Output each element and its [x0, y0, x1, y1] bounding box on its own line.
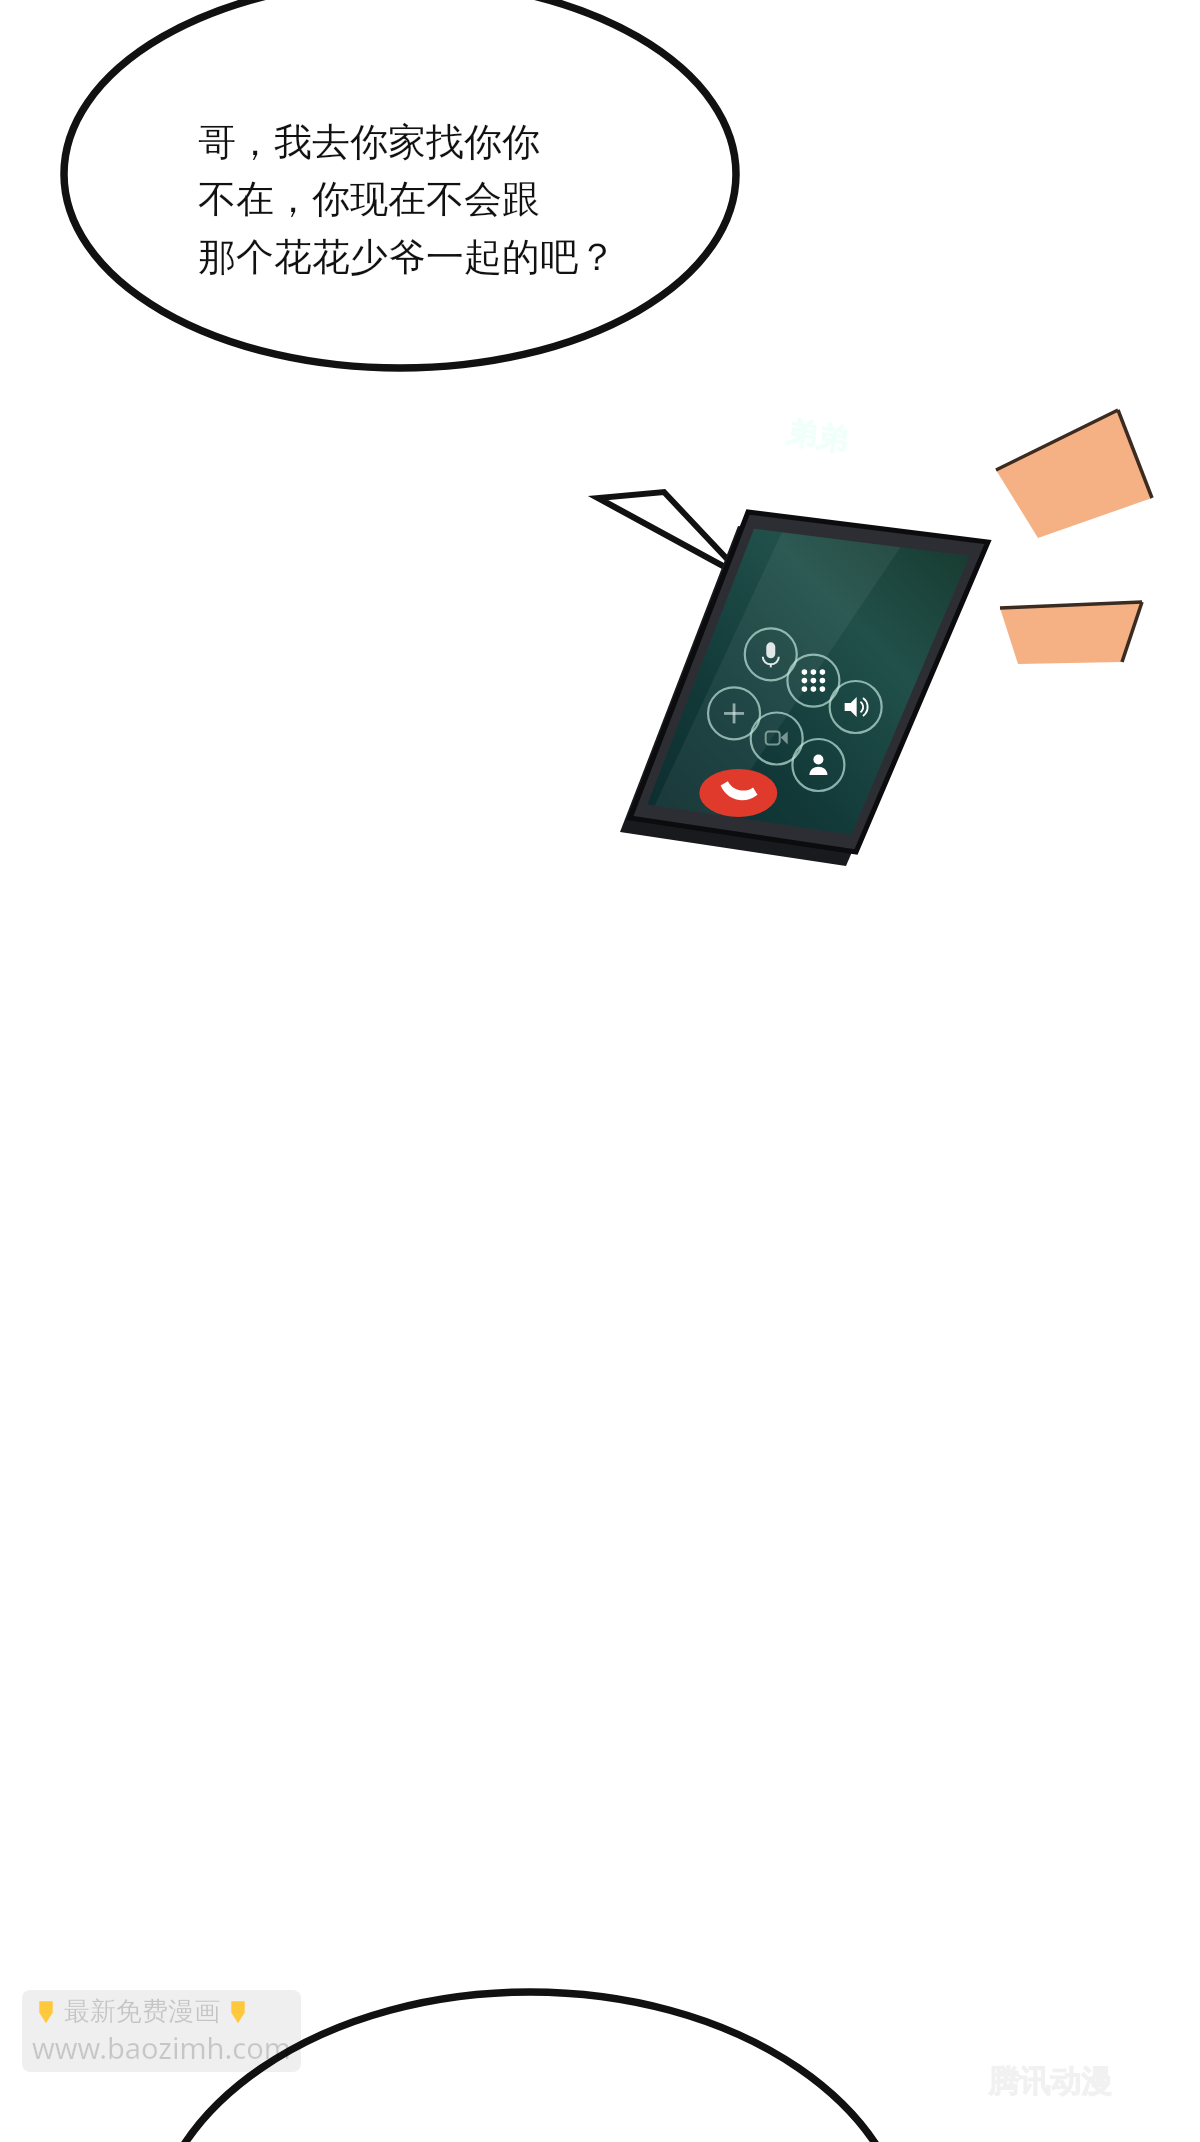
staticText: 最新免费漫画 [64, 1995, 220, 2028]
button[interactable]: Caller 弟弟 [783, 412, 851, 461]
staticText: www.baozimh.com [32, 2028, 291, 2067]
button[interactable]: 哥，我去你家找你你 不在，你现在不会跟 那个花花少爷一起的吧？ [198, 118, 738, 282]
button[interactable]: 最新免费漫画 [32, 1995, 291, 2067]
staticText: 哥，我去你家找你你 不在，你现在不会跟 那个花花少爷一起的吧？ [198, 118, 616, 282]
staticText: 腾讯动漫 [988, 2062, 1112, 2101]
staticText: 弟弟 [783, 412, 851, 461]
